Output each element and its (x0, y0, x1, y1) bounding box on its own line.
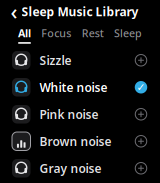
staticText: Focus (41, 26, 71, 40)
button[interactable]: Sleep (114, 26, 142, 44)
staticText: Sizzle (39, 52, 71, 68)
staticText: White noise (39, 79, 107, 95)
button[interactable]: Pink noise (0, 101, 160, 128)
staticText: ‹ (10, 0, 17, 26)
button[interactable]: Rest (82, 26, 104, 44)
staticText: Sleep Music Library (21, 3, 138, 19)
button[interactable]: White noise (0, 74, 160, 101)
staticText: Brown noise (39, 133, 111, 149)
button[interactable]: All (18, 26, 31, 44)
button[interactable]: Brown noise (0, 128, 160, 155)
staticText: All (18, 26, 31, 40)
button[interactable]: Sizzle (0, 47, 160, 74)
staticText: Rest (82, 26, 104, 40)
staticText: Gray noise (39, 160, 101, 176)
button[interactable]: Focus (41, 26, 71, 44)
button[interactable]: Gray noise (0, 155, 160, 182)
staticText: Sleep (114, 26, 142, 40)
button[interactable]: Back (4, 2, 24, 20)
staticText: ✓ (136, 81, 145, 93)
staticText: Pink noise (39, 106, 98, 122)
